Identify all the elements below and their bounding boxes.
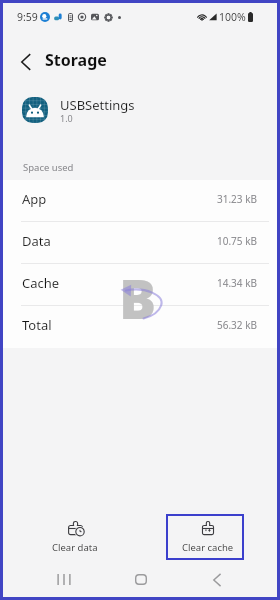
button[interactable]: Data [3,222,277,264]
staticText: App [22,190,47,208]
button[interactable]: Total [3,306,277,348]
staticText: Space used [23,161,74,174]
staticText: 1.0 [60,112,73,124]
staticText: 100% [219,10,246,24]
staticText: 31.23 kB [217,192,257,206]
staticText: Clear cache [182,541,234,554]
staticText: Clear data [52,541,98,554]
staticText: USBSettings [60,96,135,114]
button[interactable]: Clear data [34,514,116,560]
button[interactable]: Clear cache [166,514,244,560]
button[interactable]: Recent apps [44,564,84,595]
staticText: B [119,260,157,330]
staticText: 56.32 kB [217,318,257,332]
staticText: 14.34 kB [217,276,257,290]
staticText: Cache [22,274,60,292]
staticText: 9:59 [17,10,38,24]
staticText: Total [22,316,52,334]
staticText: Storage [45,49,107,71]
button[interactable]: Back [12,49,38,75]
staticText: Data [22,232,51,250]
staticText: 10.75 kB [217,234,257,248]
button[interactable]: Back [196,564,238,595]
button[interactable]: Cache [3,264,277,306]
button[interactable]: Home [120,564,162,595]
button[interactable]: App [3,180,277,222]
